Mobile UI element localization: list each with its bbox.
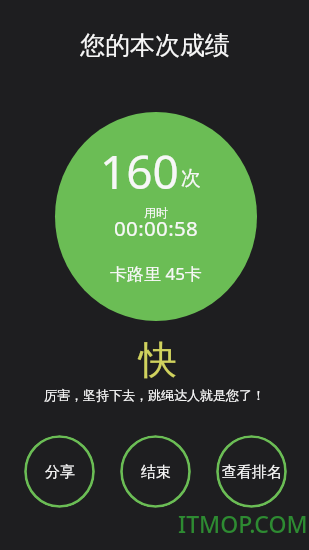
button[interactable]: 查看排名 bbox=[216, 435, 287, 508]
staticText: 快 bbox=[139, 336, 177, 384]
button[interactable]: 分享 bbox=[24, 435, 95, 508]
staticText: 厉害，坚持下去，跳绳达人就是您了！ bbox=[44, 387, 265, 403]
staticText: 结束 bbox=[141, 463, 171, 482]
staticText: 查看排名 bbox=[222, 463, 282, 482]
staticText: 00:00:58 bbox=[114, 214, 199, 242]
staticText: 用时 bbox=[144, 205, 168, 220]
staticText: 卡路里 45卡 bbox=[110, 262, 202, 285]
staticText: 次 bbox=[181, 166, 201, 191]
staticText: 您的本次成绩 bbox=[80, 30, 230, 61]
button[interactable]: 结束 bbox=[120, 435, 191, 508]
staticText: ITMOP.COM bbox=[178, 508, 308, 539]
staticText: 分享 bbox=[45, 463, 75, 482]
staticText: 160 bbox=[100, 140, 179, 203]
